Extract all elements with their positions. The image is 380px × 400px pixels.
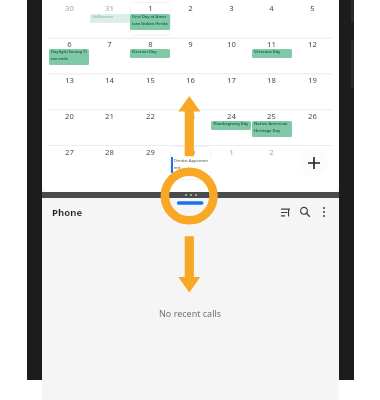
staticText: 15 <box>146 75 155 85</box>
staticText: 22 <box>146 111 155 121</box>
staticText: 24 <box>227 111 236 121</box>
staticText: 3 <box>229 3 234 13</box>
staticText: 17 <box>227 75 236 85</box>
staticText: 2 <box>269 147 274 157</box>
staticText: 26 <box>308 111 317 121</box>
staticText: Native American Heritage Day <box>254 121 288 134</box>
staticText: Election Day <box>132 49 157 55</box>
staticText: 30 <box>186 147 195 157</box>
button[interactable]: First Day of Amer ican Indian Herita <box>130 14 170 30</box>
staticText: Thanksgiving Day <box>213 121 249 127</box>
staticText: 29 <box>146 147 155 157</box>
button[interactable]: Halloween <box>90 14 130 23</box>
staticText: Veterans Day <box>254 49 281 55</box>
staticText: 19 <box>308 75 317 85</box>
staticText: 5 <box>310 3 315 13</box>
staticText: 8 <box>148 39 153 49</box>
staticText: 21 <box>105 111 114 121</box>
staticText: 1 <box>148 3 153 13</box>
staticText: 11 <box>267 39 276 49</box>
staticText: 14 <box>105 75 114 85</box>
staticText: 27 <box>65 147 74 157</box>
staticText: 1 <box>229 147 234 157</box>
button[interactable]: Veterans Day <box>252 49 292 58</box>
staticText: 9 <box>188 39 193 49</box>
staticText: Dentist Appointm ent <box>174 158 208 170</box>
staticText: 28 <box>105 147 114 157</box>
staticText: 31 <box>105 3 114 13</box>
staticText: 23 <box>186 111 195 121</box>
staticText: First Day of Amer ican Indian Herita <box>132 14 168 27</box>
button[interactable]: Daylight Saving Ti me ends <box>49 49 89 65</box>
staticText: Daylight Saving Ti me ends <box>51 49 87 62</box>
staticText: 20 <box>65 111 74 121</box>
staticText: Phone <box>52 206 83 219</box>
button[interactable]: Native American Heritage Day <box>252 121 292 137</box>
staticText: 4 <box>269 3 274 13</box>
staticText: 10 <box>227 39 236 49</box>
staticText: 18 <box>267 75 276 85</box>
button[interactable]: Search <box>295 202 315 222</box>
button[interactable]: Election Day <box>130 49 170 58</box>
staticText: 12 <box>308 39 317 49</box>
staticText: Halloween <box>92 14 114 20</box>
staticText: 6 <box>67 39 72 49</box>
button[interactable]: More options <box>314 202 334 222</box>
staticText: 25 <box>267 111 276 121</box>
button[interactable]: Dentist Appointm ent <box>171 157 211 173</box>
button[interactable]: Resize split screen <box>42 192 339 198</box>
staticText: No recent calls <box>159 307 222 319</box>
staticText: 2 <box>188 3 193 13</box>
staticText: 7 <box>107 39 112 49</box>
button[interactable]: Sort <box>275 202 295 222</box>
button[interactable]: Add event <box>300 149 328 177</box>
staticText: 30 <box>65 3 74 13</box>
staticText: 16 <box>186 75 195 85</box>
button[interactable]: Thanksgiving Day <box>211 121 251 130</box>
staticText: 13 <box>65 75 74 85</box>
